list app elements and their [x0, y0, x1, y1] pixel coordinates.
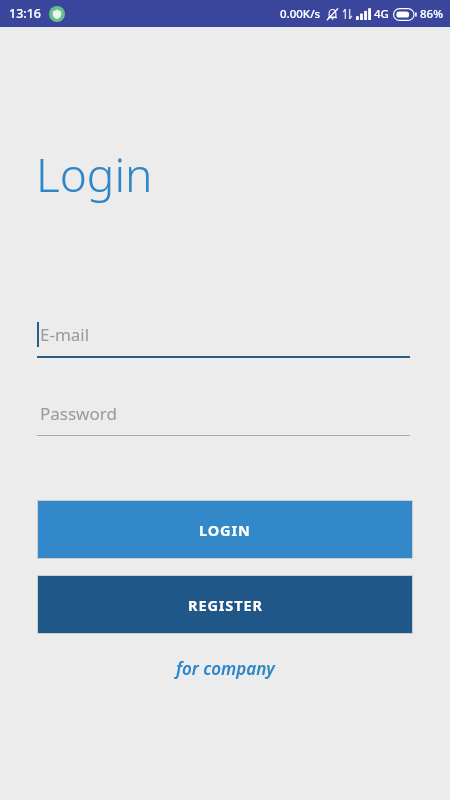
button[interactable]: E-mail [37, 322, 410, 358]
staticText: LOGIN [199, 520, 251, 540]
staticText: for company [176, 657, 275, 680]
button[interactable]: for company [0, 657, 450, 680]
staticText: Password [40, 402, 117, 425]
button[interactable]: LOGIN [38, 501, 412, 558]
button[interactable]: REGISTER [38, 576, 412, 633]
staticText: REGISTER [188, 595, 263, 615]
button[interactable]: Password [37, 402, 410, 436]
staticText: E-mail [40, 323, 90, 346]
staticText: 4G [374, 6, 389, 22]
staticText: Login [36, 143, 153, 206]
staticText: 0.00K/s [280, 6, 321, 22]
staticText: 86% [420, 6, 443, 22]
staticText: 13:16 [9, 5, 42, 22]
